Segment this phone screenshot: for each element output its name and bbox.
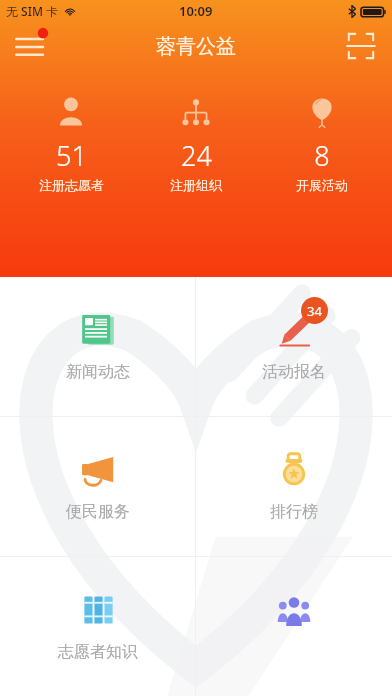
button[interactable]: Menu <box>8 23 54 69</box>
staticText: 注册志愿者 <box>39 177 104 193</box>
button[interactable]: 新闻动态 <box>0 277 195 416</box>
staticText: 51 <box>56 137 87 174</box>
staticText: 便民服务 <box>66 502 130 522</box>
button[interactable]: 排行榜 <box>196 417 392 556</box>
staticText: 活动报名 <box>262 362 326 382</box>
button[interactable]: 51 <box>16 96 126 193</box>
staticText: 排行榜 <box>270 502 318 522</box>
staticText: 24 <box>181 137 212 174</box>
staticText: 志愿者知识 <box>58 642 138 662</box>
staticText: 开展活动 <box>296 177 348 193</box>
button[interactable]: 34 <box>196 277 392 416</box>
staticText: 蓉青公益 <box>156 34 236 59</box>
button[interactable]: 24 <box>141 96 251 193</box>
staticText: 新闻动态 <box>66 362 130 382</box>
button[interactable]: 志愿者知识 <box>0 557 195 696</box>
staticText: 无 SIM 卡 <box>6 3 59 19</box>
staticText: 34 <box>307 302 322 320</box>
staticText: 8 <box>314 137 330 174</box>
staticText: 10:09 <box>179 2 213 20</box>
button[interactable] <box>196 557 392 696</box>
button[interactable]: 便民服务 <box>0 417 195 556</box>
button[interactable]: Scan QR code <box>342 27 380 65</box>
button[interactable]: 8 <box>267 96 377 193</box>
staticText: 注册组织 <box>170 177 222 193</box>
